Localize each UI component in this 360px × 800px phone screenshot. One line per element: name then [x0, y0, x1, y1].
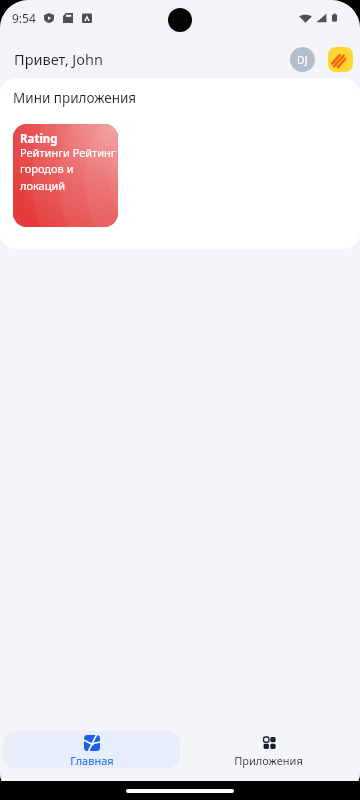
staticText: 9:54: [12, 10, 36, 26]
button[interactable]: Rating: [13, 124, 118, 227]
staticText: Rating: [20, 131, 58, 147]
staticText: DJ: [297, 53, 308, 67]
staticText: Приложения: [234, 753, 303, 768]
button[interactable]: Главная: [3, 731, 180, 768]
staticText: Рейтинги Рейтинг городов и локаций: [20, 145, 117, 194]
button[interactable]: Приложения: [180, 731, 357, 768]
button[interactable]: DJ: [290, 47, 315, 72]
staticText: Главная: [70, 753, 114, 768]
staticText: Привет, John: [14, 49, 103, 69]
staticText: Мини приложения: [13, 89, 137, 107]
button[interactable]: Assistant: [328, 47, 353, 72]
